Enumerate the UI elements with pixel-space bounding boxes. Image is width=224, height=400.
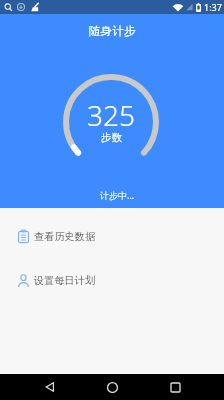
staticText: 1:37 (204, 1, 222, 13)
staticText: 随身计步 (89, 24, 136, 39)
button[interactable]: Recents (162, 374, 188, 400)
button[interactable]: Back (37, 374, 63, 400)
button[interactable]: 查看历史数据 (0, 214, 224, 258)
staticText: 查看历史数据 (34, 230, 96, 243)
button[interactable]: Home (99, 374, 125, 400)
staticText: 步数 (101, 131, 122, 144)
staticText: 计步中... (100, 189, 135, 201)
button[interactable]: 设置每日计划 (0, 258, 224, 302)
staticText: 325 (87, 96, 135, 134)
staticText: 设置每日计划 (34, 274, 96, 287)
